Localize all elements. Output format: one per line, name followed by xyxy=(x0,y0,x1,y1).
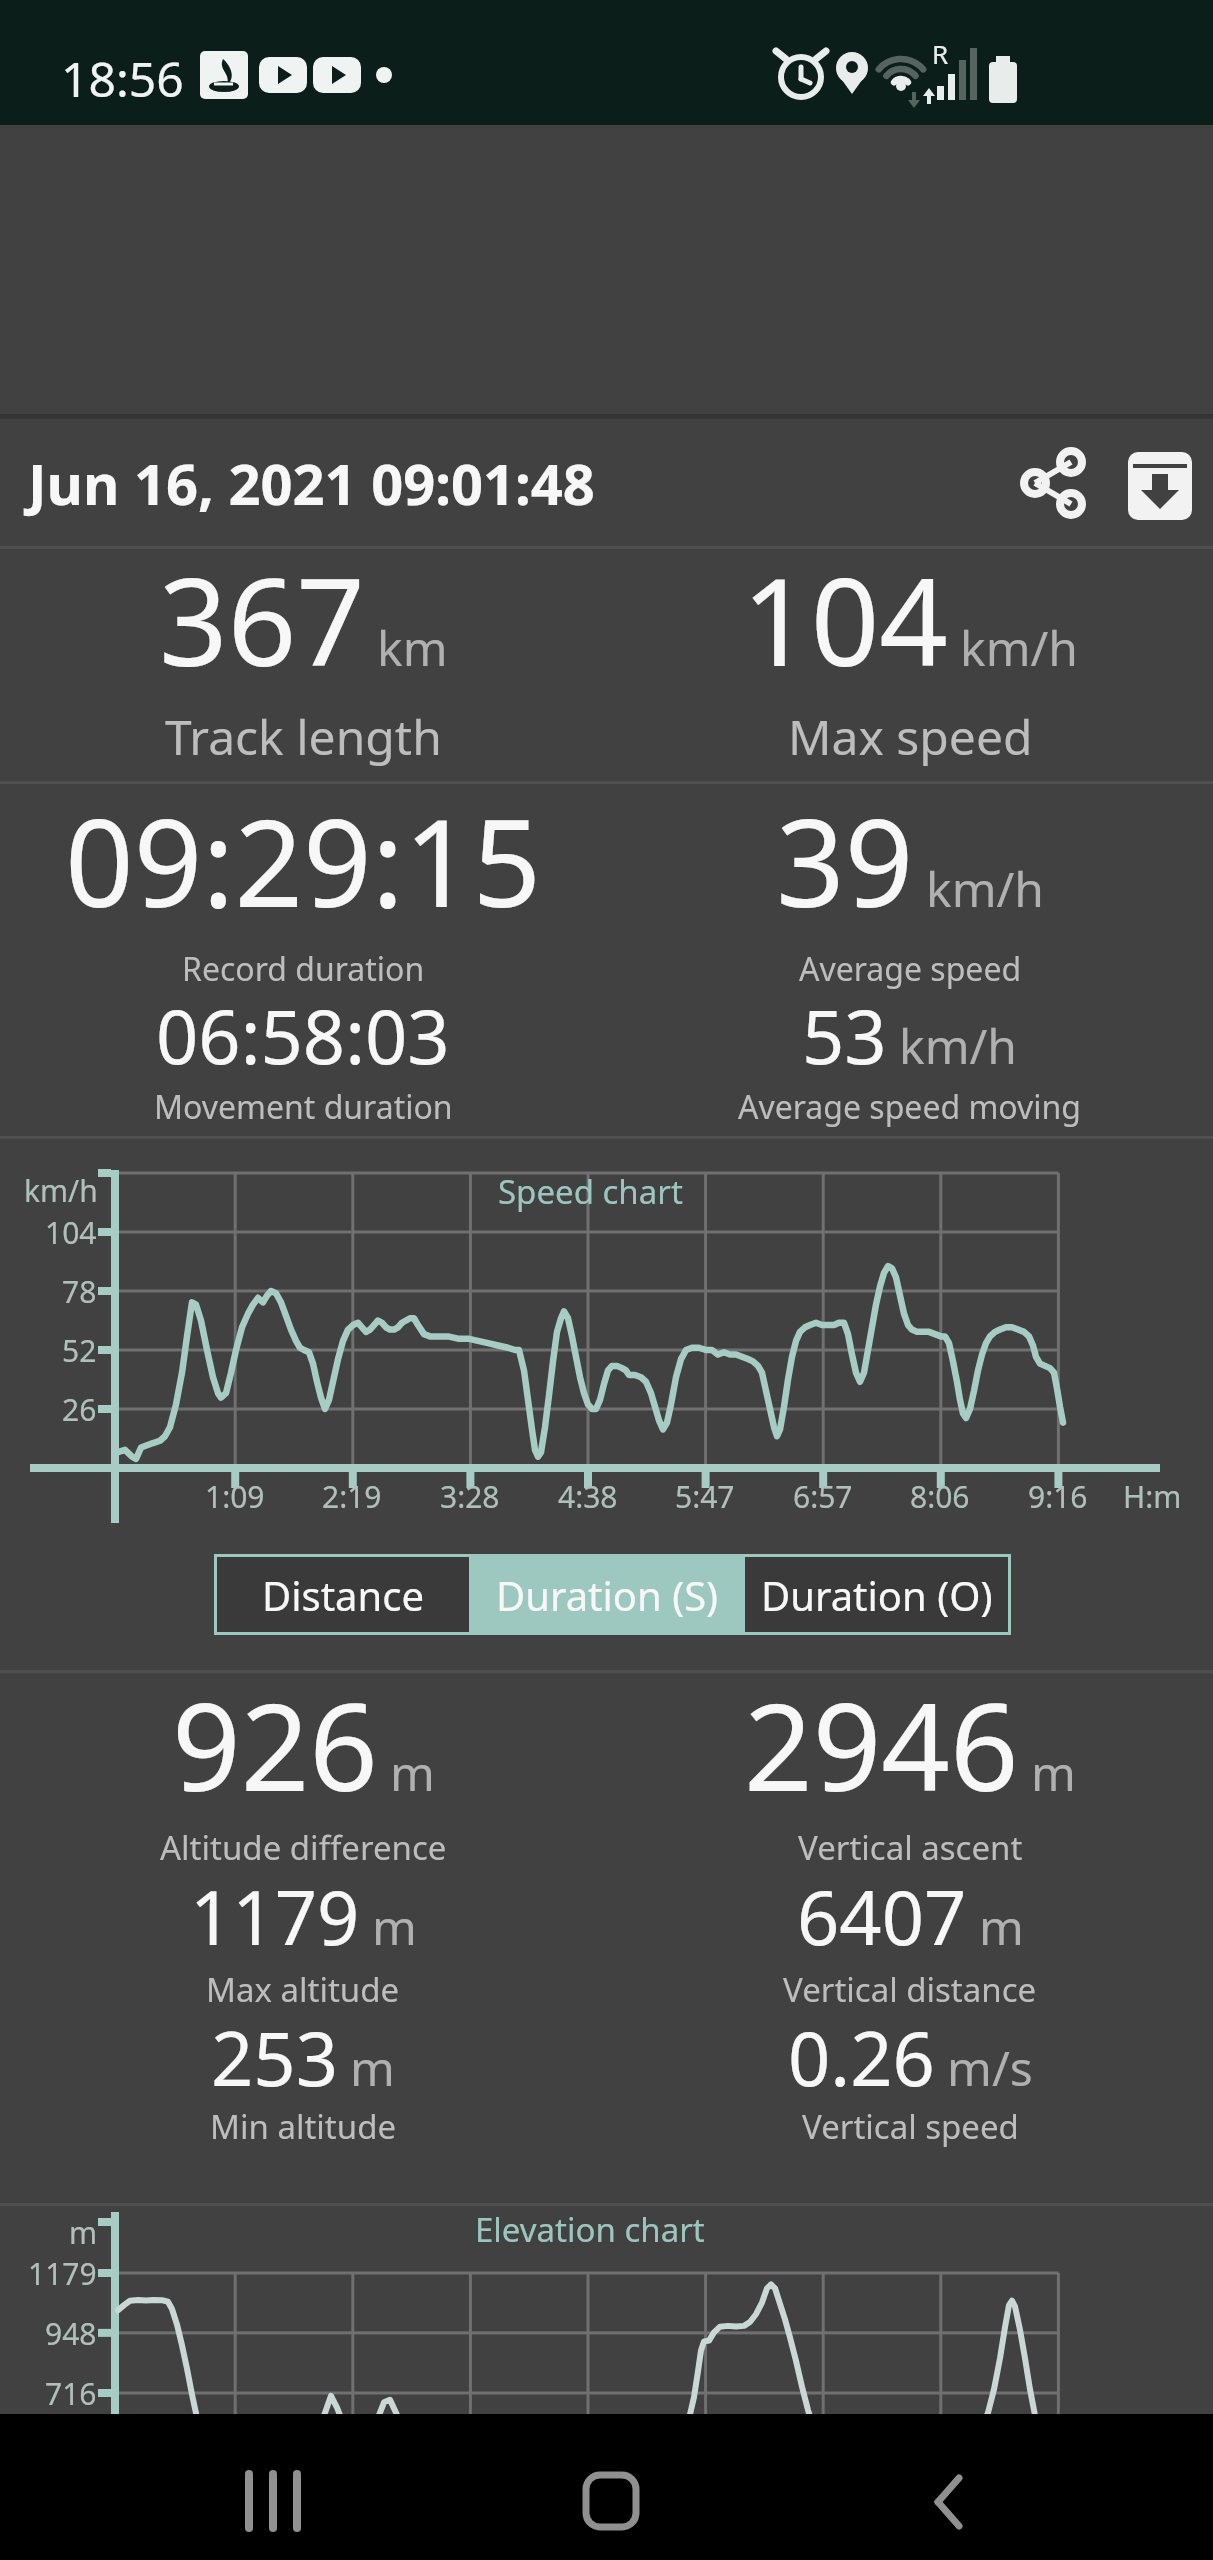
staticText: 3:28 xyxy=(440,1476,500,1517)
staticText: 104 xyxy=(45,1212,97,1253)
staticText: 253 xyxy=(211,2007,338,2108)
staticText: km/h xyxy=(24,1170,98,1211)
staticText: m xyxy=(390,1740,435,1805)
staticText: Jun 16, 2021 09:01:48 xyxy=(28,445,595,521)
staticText: 1:09 xyxy=(205,1476,265,1517)
staticText: km/h xyxy=(926,856,1045,921)
staticText: Speed chart xyxy=(498,1169,683,1214)
staticText: Max altitude xyxy=(206,1967,400,2012)
staticText: m xyxy=(372,1894,417,1959)
staticText: 104 xyxy=(742,538,948,701)
staticText: 78 xyxy=(62,1271,97,1312)
staticText: 2946 xyxy=(744,1663,1019,1826)
staticText: Min altitude xyxy=(210,2104,397,2149)
staticText: 09:29:15 xyxy=(65,779,542,942)
staticText: 18:56 xyxy=(61,46,184,111)
staticText: 8:06 xyxy=(910,1476,970,1517)
staticText: 4:38 xyxy=(558,1476,618,1517)
staticText: m xyxy=(979,1894,1024,1959)
staticText: 0.26 xyxy=(788,2007,935,2108)
staticText: 53 xyxy=(802,985,887,1086)
staticText: Altitude difference xyxy=(160,1825,447,1870)
staticText: 1179 xyxy=(190,1866,360,1967)
button[interactable]: Duration (S) xyxy=(469,1554,745,1635)
staticText: 9:16 xyxy=(1028,1476,1088,1517)
staticText: Distance xyxy=(262,1568,425,1622)
staticText: 26 xyxy=(62,1389,97,1430)
staticText: 6:57 xyxy=(793,1476,853,1517)
staticText: Average speed moving xyxy=(738,1085,1082,1129)
staticText: km/h xyxy=(899,1013,1018,1078)
staticText: 926 xyxy=(172,1663,378,1826)
staticText: Vertical speed xyxy=(802,2104,1019,2149)
button[interactable]: Jun 16, 2021 09:01:48 xyxy=(0,419,990,546)
staticText: Duration (O) xyxy=(761,1568,993,1622)
staticText: 52 xyxy=(62,1330,97,1371)
button[interactable] xyxy=(405,2414,809,2560)
button[interactable] xyxy=(1118,442,1202,530)
button[interactable] xyxy=(0,2414,405,2560)
button[interactable] xyxy=(809,2414,1213,2560)
staticText: m/s xyxy=(947,2035,1033,2100)
button[interactable]: Distance xyxy=(217,1557,469,1632)
staticText: Track length xyxy=(165,704,442,769)
staticText: R xyxy=(932,36,949,71)
staticText: km/h xyxy=(960,615,1079,680)
staticText: 5:47 xyxy=(675,1476,735,1517)
staticText: Record duration xyxy=(182,947,425,991)
staticText: 716 xyxy=(45,2373,97,2414)
staticText: Vertical ascent xyxy=(798,1825,1023,1870)
staticText: Movement duration xyxy=(154,1085,453,1129)
staticText: 367 xyxy=(159,538,365,701)
staticText: Average speed xyxy=(799,947,1022,991)
staticText: m xyxy=(69,2212,98,2253)
staticText: Vertical distance xyxy=(783,1967,1037,2012)
staticText: 1179 xyxy=(28,2253,97,2294)
staticText: 948 xyxy=(45,2313,97,2354)
staticText: 2:19 xyxy=(322,1476,382,1517)
button[interactable]: Duration (O) xyxy=(745,1557,1008,1632)
staticText: km xyxy=(377,615,448,680)
staticText: Max speed xyxy=(788,704,1033,769)
button[interactable] xyxy=(1003,451,1103,517)
staticText: m xyxy=(1031,1740,1076,1805)
staticText: 06:58:03 xyxy=(156,985,450,1086)
staticText: H:m xyxy=(1123,1476,1182,1517)
staticText: Elevation chart xyxy=(475,2207,705,2252)
staticText: 39 xyxy=(776,779,914,942)
staticText: Duration (S) xyxy=(496,1568,719,1622)
staticText: 6407 xyxy=(797,1866,967,1967)
staticText: m xyxy=(350,2035,395,2100)
